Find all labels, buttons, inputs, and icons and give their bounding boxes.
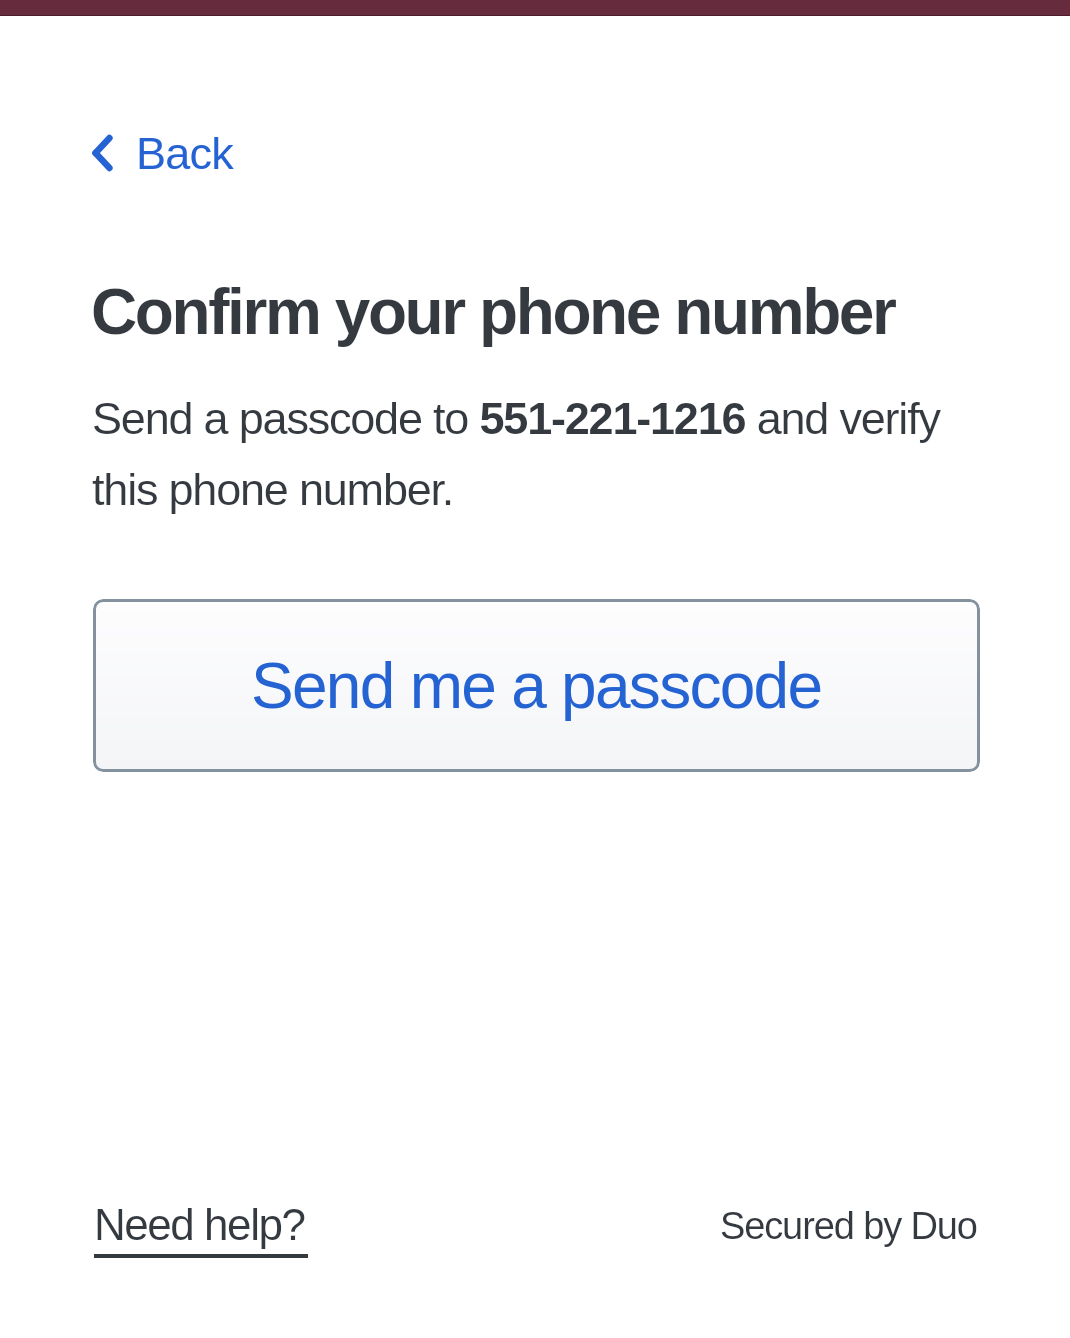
button[interactable]: Back <box>78 118 250 194</box>
button[interactable]: Need help? <box>94 1196 308 1262</box>
staticText: Back <box>136 128 234 178</box>
button[interactable]: Send me a passcode <box>93 599 980 772</box>
staticText: Need help? <box>94 1200 305 1249</box>
staticText: Secured by Duo <box>720 1205 977 1247</box>
staticText: Send a passcode to 551-221-1216 and veri… <box>92 393 976 515</box>
staticText: Send me a passcode <box>251 650 822 722</box>
staticText: Confirm your phone number <box>91 276 895 348</box>
